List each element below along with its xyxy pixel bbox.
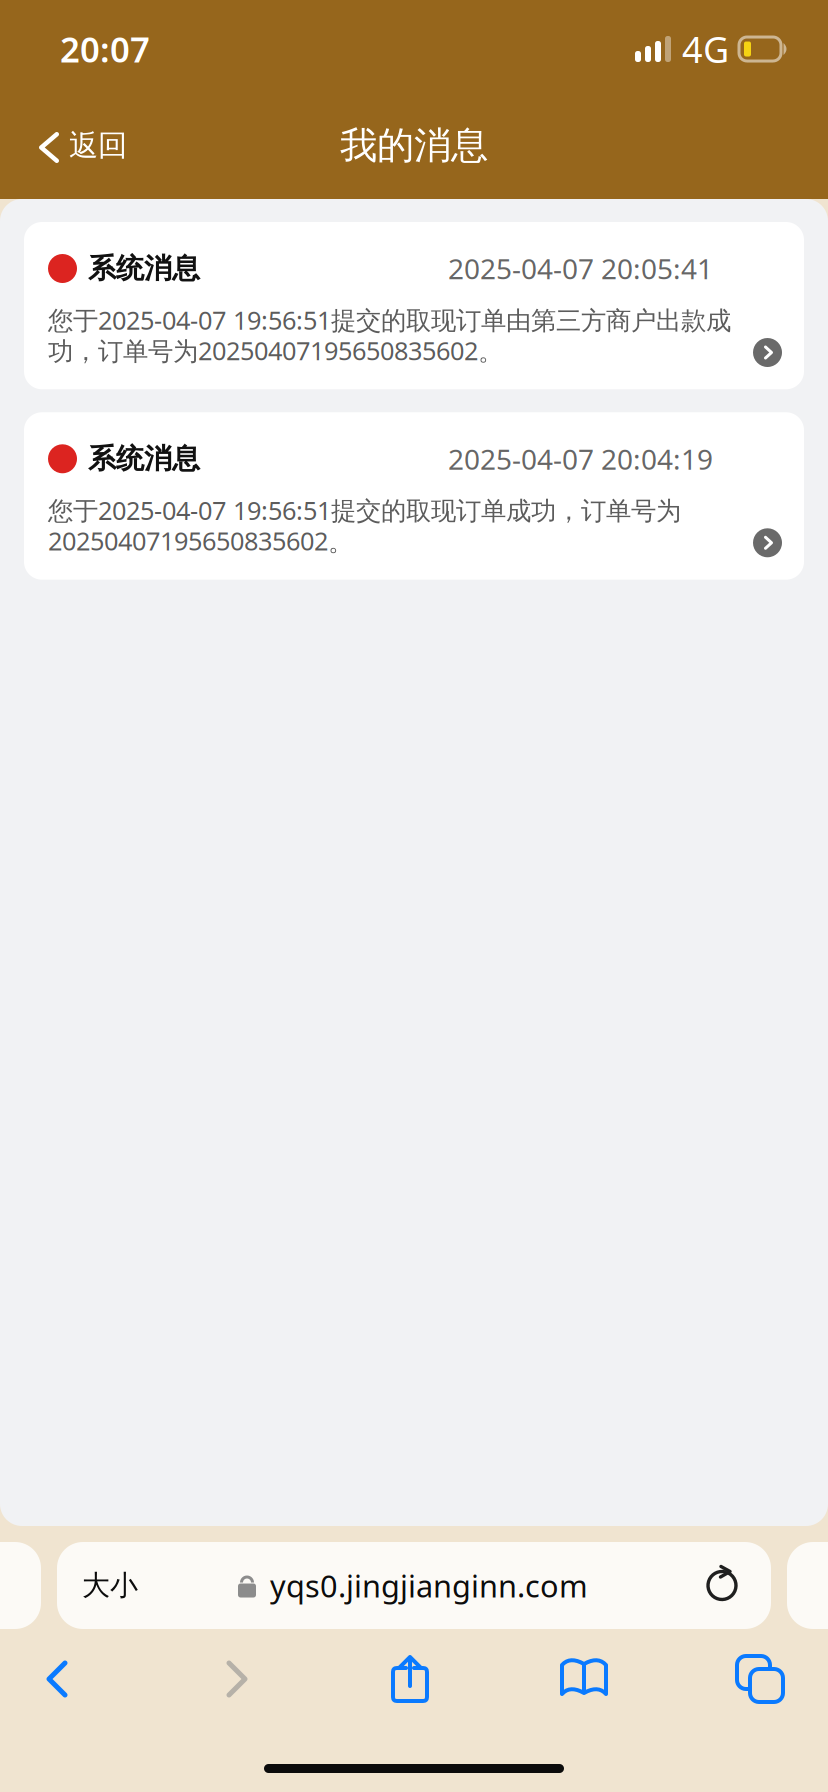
button[interactable]: 系统消息 [24,222,804,389]
staticText: 您于2025-04-07 19:56:51提交的取现订单由第三方商户出款成 [48,303,731,337]
staticText: 功，订单号为20250407195650835602。 [48,334,503,367]
button[interactable]: Bookmarks [460,1642,708,1716]
button[interactable]: Forward [114,1642,360,1716]
staticText: 20:07 [60,26,150,72]
button[interactable]: 返回 [0,111,147,179]
staticText: 返回 [69,127,127,163]
button[interactable]: Share [360,1642,460,1716]
staticText: 20250407195650835602。 [48,524,353,558]
button[interactable]: 大小 [57,1542,771,1629]
staticText: 我的消息 [340,123,488,168]
button[interactable]: 系统消息 [24,412,804,580]
staticText: 4G [682,25,729,73]
staticText: 2025-04-07 20:05:41 [448,250,713,287]
button[interactable]: Tabs [708,1642,812,1716]
button[interactable]: Back [0,1642,114,1716]
staticText: 系统消息 [88,251,200,286]
staticText: 大小 [82,1568,138,1603]
staticText: yqs0.jingjianginn.com [270,1565,588,1606]
staticText: 2025-04-07 20:04:19 [448,440,713,477]
staticText: 系统消息 [88,442,200,476]
staticText: 您于2025-04-07 19:56:51提交的取现订单成功，订单号为 [48,493,681,527]
